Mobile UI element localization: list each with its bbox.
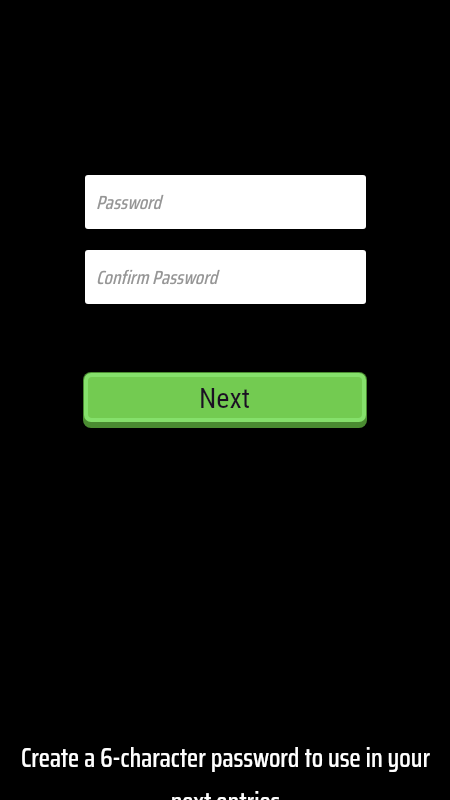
staticText: Password (96, 187, 162, 217)
staticText: Create a 6-character password to use in … (13, 737, 438, 800)
button[interactable]: Next (83, 372, 367, 428)
staticText: Next (199, 382, 251, 415)
button[interactable]: Password (85, 175, 366, 229)
staticText: Confirm Password (96, 262, 218, 292)
button[interactable]: Confirm Password (85, 250, 366, 304)
